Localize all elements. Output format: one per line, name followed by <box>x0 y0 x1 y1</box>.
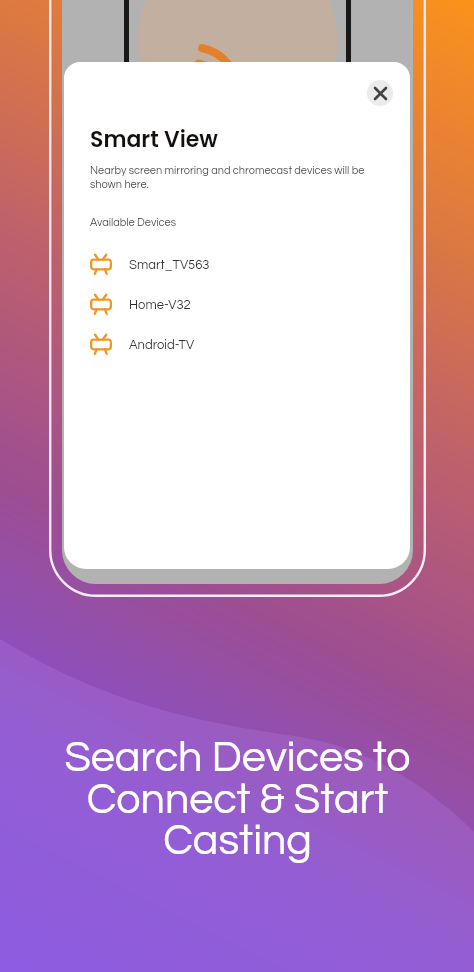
staticText: Home-V32 <box>129 298 191 311</box>
staticText: Search Devices to Connect & Start Castin… <box>64 736 411 863</box>
staticText: Smart_TV563 <box>129 258 210 271</box>
staticText: Smart View <box>90 124 218 155</box>
staticText: Android-TV <box>129 338 195 351</box>
button[interactable]: Smart_TV563 <box>90 244 390 284</box>
button[interactable]: Android-TV <box>90 324 390 364</box>
staticText: Nearby screen mirroring and chromecast d… <box>90 165 390 190</box>
staticText: Available Devices <box>90 217 176 228</box>
button[interactable]: Home-V32 <box>90 284 390 324</box>
button[interactable]: Close <box>367 80 393 106</box>
